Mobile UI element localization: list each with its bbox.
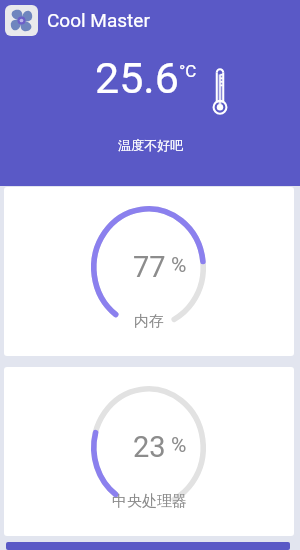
button[interactable]: 77 xyxy=(4,187,294,356)
button[interactable]: Cool down xyxy=(6,542,290,550)
staticText: 中央处理器 xyxy=(112,492,187,511)
staticText: % xyxy=(171,433,187,458)
staticText: % xyxy=(171,253,187,278)
button[interactable]: Cool Master app icon xyxy=(5,5,38,36)
staticText: Cool Master xyxy=(47,9,150,31)
staticText: °C xyxy=(179,61,197,81)
staticText: 25.6 xyxy=(95,53,179,103)
staticText: 温度不好吧 xyxy=(118,137,183,153)
staticText: 23 xyxy=(133,430,166,464)
button[interactable]: 23 xyxy=(4,367,294,536)
other: Temperature xyxy=(213,68,227,115)
staticText: 内存 xyxy=(134,312,164,331)
staticText: 77 xyxy=(133,250,166,284)
